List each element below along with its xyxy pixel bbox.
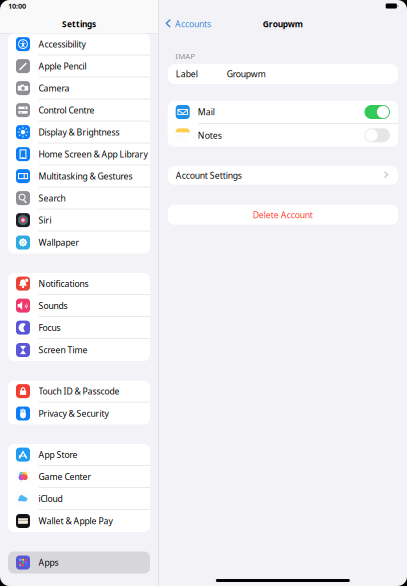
button[interactable]: Siri: [8, 209, 150, 231]
staticText: Mail: [198, 106, 215, 118]
button[interactable]: Wallpaper: [8, 231, 150, 253]
button[interactable]: Delete Account: [159, 205, 407, 225]
button[interactable]: Notes toggle: [364, 128, 390, 142]
staticText: Label: [176, 68, 198, 80]
button[interactable]: Wallet & Apple Pay: [8, 510, 150, 532]
staticText: Settings: [62, 18, 96, 30]
staticText: Apps: [38, 557, 58, 568]
staticText: Game Center: [38, 471, 91, 482]
button[interactable]: Camera: [8, 77, 150, 99]
button[interactable]: Accounts: [159, 14, 211, 34]
staticText: Screen Time: [38, 344, 87, 356]
button[interactable]: Game Center: [8, 466, 150, 488]
staticText: App Store: [38, 449, 77, 460]
staticText: Account Settings: [176, 169, 242, 181]
staticText: Accounts: [175, 18, 211, 30]
staticText: Notes: [198, 129, 222, 141]
staticText: Apple Pencil: [38, 60, 86, 72]
staticText: Accessibility: [38, 38, 85, 50]
staticText: Wallet & Apple Pay: [38, 515, 112, 527]
staticText: Display & Brightness: [38, 126, 119, 138]
staticText: Search: [38, 192, 65, 204]
button[interactable]: Control Centre: [8, 99, 150, 121]
button[interactable]: Focus: [8, 317, 150, 339]
button[interactable]: Display & Brightness: [8, 121, 150, 143]
staticText: Home Screen & App Library: [38, 148, 147, 160]
staticText: Groupwm: [227, 68, 266, 80]
staticText: Touch ID & Passcode: [38, 385, 119, 397]
button[interactable]: Touch ID & Passcode: [8, 380, 150, 402]
staticText: Multitasking & Gestures: [38, 170, 132, 182]
button[interactable]: Apps: [8, 551, 150, 573]
button[interactable]: Notifications: [8, 273, 150, 295]
staticText: Camera: [38, 82, 69, 94]
button[interactable]: Search: [8, 187, 150, 209]
staticText: iCloud: [38, 493, 62, 504]
staticText: Delete Account: [253, 209, 313, 221]
button[interactable]: Accessibility: [8, 33, 150, 55]
staticText: Notifications: [38, 278, 88, 289]
button[interactable]: Mail toggle: [364, 105, 390, 119]
staticText: Wallpaper: [38, 237, 79, 248]
staticText: Focus: [38, 322, 60, 333]
button[interactable]: Apple Pencil: [8, 55, 150, 77]
button[interactable]: App Store: [8, 444, 150, 466]
staticText: IMAP: [175, 51, 195, 61]
button[interactable]: Sounds: [8, 295, 150, 317]
staticText: Sounds: [38, 300, 67, 311]
button[interactable]: Screen Time: [8, 339, 150, 361]
staticText: 10:00: [8, 1, 26, 11]
staticText: Privacy & Security: [38, 408, 108, 419]
staticText: Groupwm: [263, 18, 303, 30]
staticText: Control Centre: [38, 104, 94, 116]
button[interactable]: Privacy & Security: [8, 402, 150, 424]
button[interactable]: Account Settings: [159, 166, 407, 185]
button[interactable]: Home Screen & App Library: [8, 143, 150, 165]
staticText: Siri: [38, 214, 51, 226]
button[interactable]: Multitasking & Gestures: [8, 165, 150, 187]
button[interactable]: iCloud: [8, 488, 150, 510]
